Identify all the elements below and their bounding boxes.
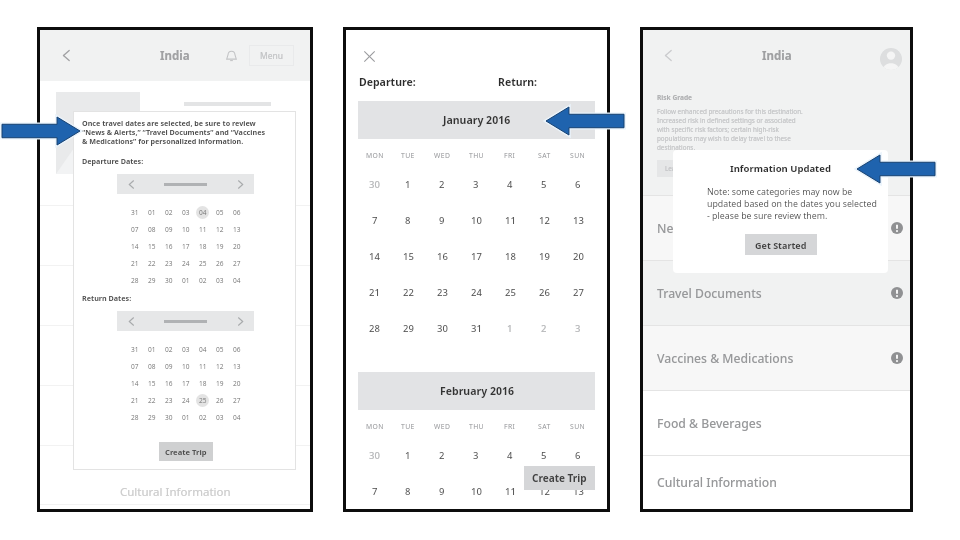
button[interactable]: 13 — [228, 358, 245, 375]
button[interactable]: 18 — [194, 238, 211, 255]
button[interactable]: 13 — [561, 473, 595, 509]
button[interactable]: 26 — [211, 255, 228, 272]
button[interactable]: 21 — [126, 392, 143, 409]
button[interactable]: 30 — [358, 166, 391, 202]
button[interactable]: 04 — [228, 409, 245, 426]
button[interactable]: Next month — [226, 174, 254, 194]
button[interactable]: 09 — [160, 221, 177, 238]
button[interactable]: 10 — [459, 202, 493, 238]
button[interactable]: 27 — [228, 392, 245, 409]
button[interactable]: 08 — [143, 358, 160, 375]
button[interactable]: 02 — [160, 204, 177, 221]
button[interactable]: 03 — [211, 272, 228, 289]
button[interactable]: 29 — [143, 272, 160, 289]
button[interactable]: Notifications — [221, 43, 241, 67]
button[interactable]: 17 — [177, 375, 194, 392]
button[interactable]: 12 — [211, 221, 228, 238]
button[interactable]: 03 — [177, 204, 194, 221]
button[interactable]: 19 — [527, 238, 561, 274]
button[interactable]: 14 — [126, 375, 143, 392]
button[interactable]: 08 — [143, 221, 160, 238]
button[interactable]: 15 — [143, 238, 160, 255]
button[interactable]: Create Trip — [524, 466, 595, 490]
button[interactable]: Back — [49, 30, 83, 81]
button[interactable]: 28 — [126, 409, 143, 426]
button[interactable]: 24 — [177, 255, 194, 272]
button[interactable]: 27 — [561, 274, 595, 310]
button[interactable]: 25 — [493, 274, 527, 310]
button[interactable]: 20 — [228, 238, 245, 255]
button[interactable]: 3 — [561, 310, 595, 346]
button[interactable]: News & Alerts — [643, 196, 910, 260]
button[interactable]: 15 — [391, 238, 425, 274]
button[interactable]: 01 — [143, 341, 160, 358]
button[interactable]: 9 — [425, 202, 459, 238]
button[interactable]: 05 — [211, 341, 228, 358]
button[interactable]: 26 — [211, 392, 228, 409]
button[interactable]: 04 — [228, 272, 245, 289]
button[interactable]: 12 — [211, 358, 228, 375]
button[interactable]: 14 — [126, 238, 143, 255]
button[interactable]: 02 — [194, 272, 211, 289]
button[interactable]: 3 — [459, 437, 493, 473]
button[interactable]: 1 — [391, 437, 425, 473]
button[interactable]: 24 — [177, 392, 194, 409]
button[interactable]: 10 — [177, 358, 194, 375]
button[interactable]: 18 — [493, 238, 527, 274]
button[interactable]: 22 — [391, 274, 425, 310]
button[interactable]: 30 — [160, 272, 177, 289]
button[interactable]: 9 — [425, 473, 459, 509]
button[interactable]: 09 — [160, 358, 177, 375]
button[interactable]: 2 — [527, 310, 561, 346]
button[interactable]: 28 — [358, 310, 391, 346]
button[interactable]: 5 — [527, 437, 561, 473]
button[interactable]: 7 — [358, 202, 391, 238]
button[interactable]: 27 — [228, 255, 245, 272]
button[interactable]: February 2016 — [358, 372, 595, 410]
button[interactable]: 11 — [194, 221, 211, 238]
button[interactable]: 4 — [493, 437, 527, 473]
button[interactable]: 01 — [143, 204, 160, 221]
button[interactable]: 1 — [493, 310, 527, 346]
button[interactable]: 13 — [561, 202, 595, 238]
button[interactable]: 11 — [194, 358, 211, 375]
button[interactable]: 1 — [391, 166, 425, 202]
button[interactable]: Travel Documents — [643, 261, 910, 325]
button[interactable]: Close — [360, 47, 378, 65]
button[interactable]: 03 — [177, 341, 194, 358]
button[interactable]: 30 — [358, 437, 391, 473]
button[interactable]: 16 — [160, 238, 177, 255]
button[interactable]: 24 — [459, 274, 493, 310]
button[interactable]: 10 — [459, 473, 493, 509]
button[interactable]: 7 — [358, 473, 391, 509]
button[interactable]: 29 — [143, 409, 160, 426]
button[interactable]: 20 — [228, 375, 245, 392]
button[interactable]: 2 — [425, 437, 459, 473]
button[interactable]: 15 — [143, 375, 160, 392]
button[interactable]: Create Trip — [159, 442, 213, 461]
button[interactable]: 4 — [493, 166, 527, 202]
button[interactable]: 01 — [177, 272, 194, 289]
button[interactable]: 19 — [211, 238, 228, 255]
button[interactable]: 31 — [126, 204, 143, 221]
button[interactable]: 8 — [391, 202, 425, 238]
button[interactable]: 23 — [425, 274, 459, 310]
button[interactable]: 07 — [126, 358, 143, 375]
button[interactable]: 12 — [527, 202, 561, 238]
button[interactable]: Profile — [880, 48, 902, 70]
button[interactable]: 3 — [459, 166, 493, 202]
button[interactable]: 5 — [527, 166, 561, 202]
button[interactable]: 21 — [126, 255, 143, 272]
button[interactable]: Get Started — [745, 234, 817, 255]
button[interactable]: Previous month — [117, 311, 145, 331]
button[interactable]: 8 — [391, 473, 425, 509]
button[interactable]: 23 — [160, 255, 177, 272]
button[interactable]: 23 — [160, 392, 177, 409]
button[interactable]: Learn more — [657, 160, 707, 177]
button[interactable]: 11 — [493, 473, 527, 509]
button[interactable]: 30 — [160, 409, 177, 426]
button[interactable]: 31 — [126, 341, 143, 358]
button[interactable]: 30 — [425, 310, 459, 346]
button[interactable]: 25 — [194, 255, 211, 272]
button[interactable]: 11 — [493, 202, 527, 238]
